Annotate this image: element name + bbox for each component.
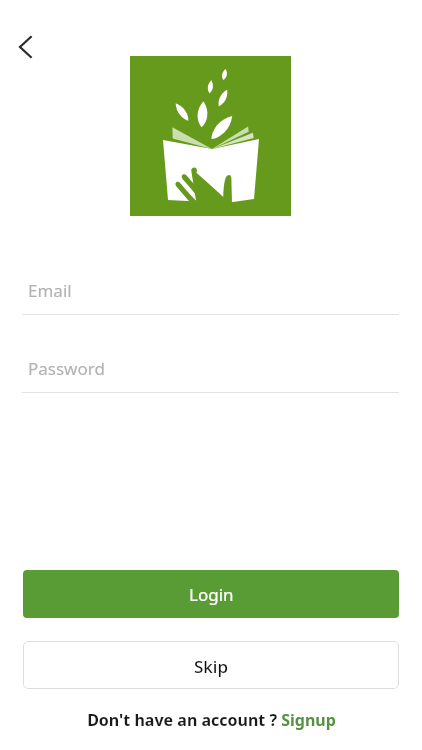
staticText: Login	[189, 583, 234, 606]
staticText: Password	[28, 357, 105, 380]
button[interactable]: Skip	[23, 641, 399, 689]
staticText: Email	[28, 279, 72, 302]
button[interactable]: Login	[23, 570, 399, 618]
button[interactable]: Back	[8, 27, 48, 67]
staticText: Skip	[194, 655, 228, 678]
staticText: Don't have an account ? Signup	[87, 709, 336, 731]
button[interactable]: Don't have an account ? Signup	[0, 706, 422, 734]
